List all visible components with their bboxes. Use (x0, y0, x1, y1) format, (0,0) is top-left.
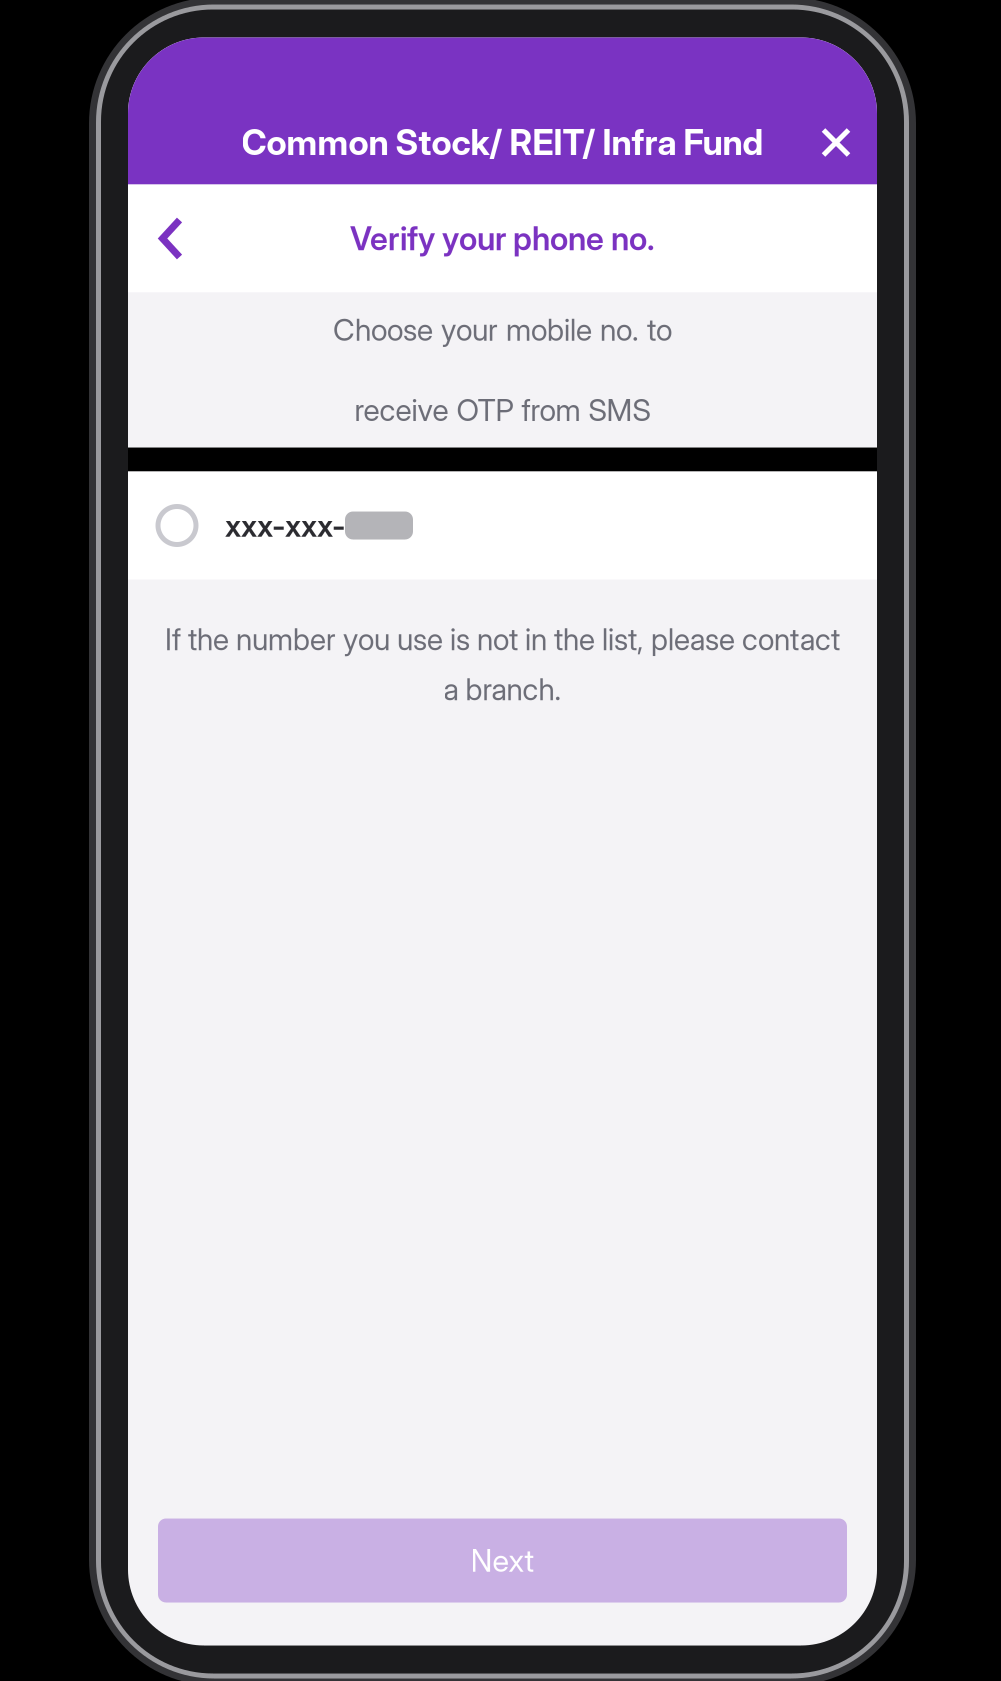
staticText: Next (470, 1542, 534, 1579)
staticText: Choose your mobile no. to (333, 312, 672, 348)
button[interactable]: Back (139, 202, 203, 274)
staticText: receive OTP from SMS (354, 392, 650, 428)
staticText: xxx-xxx- (225, 507, 345, 544)
button[interactable]: xxx-xxx- (128, 471, 877, 579)
staticText: a branch. (443, 671, 561, 707)
staticText: Common Stock/ REIT/ Infra Fund (241, 121, 763, 163)
button[interactable]: Close (804, 110, 868, 174)
staticText: If the number you use is not in the list… (165, 621, 840, 657)
staticText: Verify your phone no. (350, 219, 655, 258)
button[interactable]: Next (158, 1518, 847, 1602)
